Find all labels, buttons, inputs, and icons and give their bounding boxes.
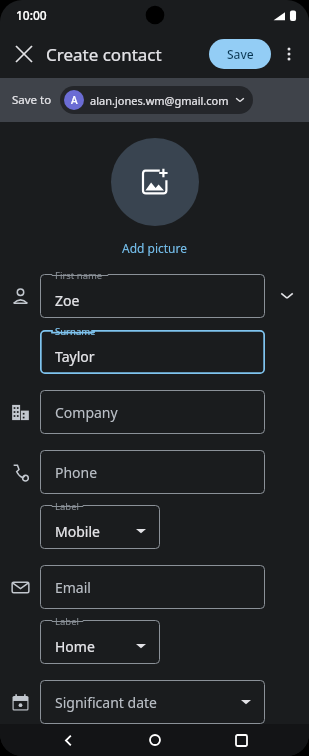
- button[interactable]: Label: [40, 505, 160, 549]
- button[interactable]: Significant date: [40, 680, 265, 724]
- staticText: Create contact: [46, 43, 162, 66]
- staticText: Significant date: [55, 693, 157, 712]
- button[interactable]: Expand name fields: [265, 274, 309, 318]
- staticText: Company: [55, 403, 118, 422]
- button[interactable]: Home: [137, 724, 173, 756]
- button[interactable]: Email: [40, 565, 265, 609]
- button[interactable]: Add picture: [118, 238, 192, 258]
- button[interactable]: Close: [6, 36, 42, 72]
- button[interactable]: A: [60, 86, 253, 114]
- staticText: Taylor: [55, 347, 95, 366]
- button[interactable]: Phone: [40, 450, 265, 494]
- staticText: 10:00: [16, 7, 47, 23]
- staticText: Phone: [55, 463, 98, 482]
- staticText: Label: [55, 500, 79, 513]
- button[interactable]: Recent apps: [223, 724, 259, 756]
- button[interactable]: Save: [209, 39, 271, 69]
- staticText: Label: [55, 615, 79, 628]
- staticText: Home: [55, 637, 95, 656]
- staticText: Save: [227, 46, 254, 62]
- staticText: Save to: [12, 92, 52, 108]
- button[interactable]: Label: [40, 620, 160, 664]
- button[interactable]: Back: [50, 724, 86, 756]
- button[interactable]: Company: [40, 390, 265, 434]
- button[interactable]: Add picture: [111, 138, 199, 226]
- staticText: alan.jones.wm@gmail.com: [90, 93, 229, 108]
- button[interactable]: First name: [40, 274, 265, 318]
- staticText: Email: [55, 578, 91, 597]
- button[interactable]: Surname: [40, 330, 265, 374]
- staticText: Mobile: [55, 522, 100, 541]
- staticText: Add picture: [122, 240, 188, 256]
- staticText: A: [71, 93, 78, 107]
- staticText: Surname: [55, 325, 96, 338]
- staticText: Zoe: [55, 291, 80, 310]
- button[interactable]: More options: [273, 38, 305, 70]
- staticText: First name: [55, 269, 103, 282]
